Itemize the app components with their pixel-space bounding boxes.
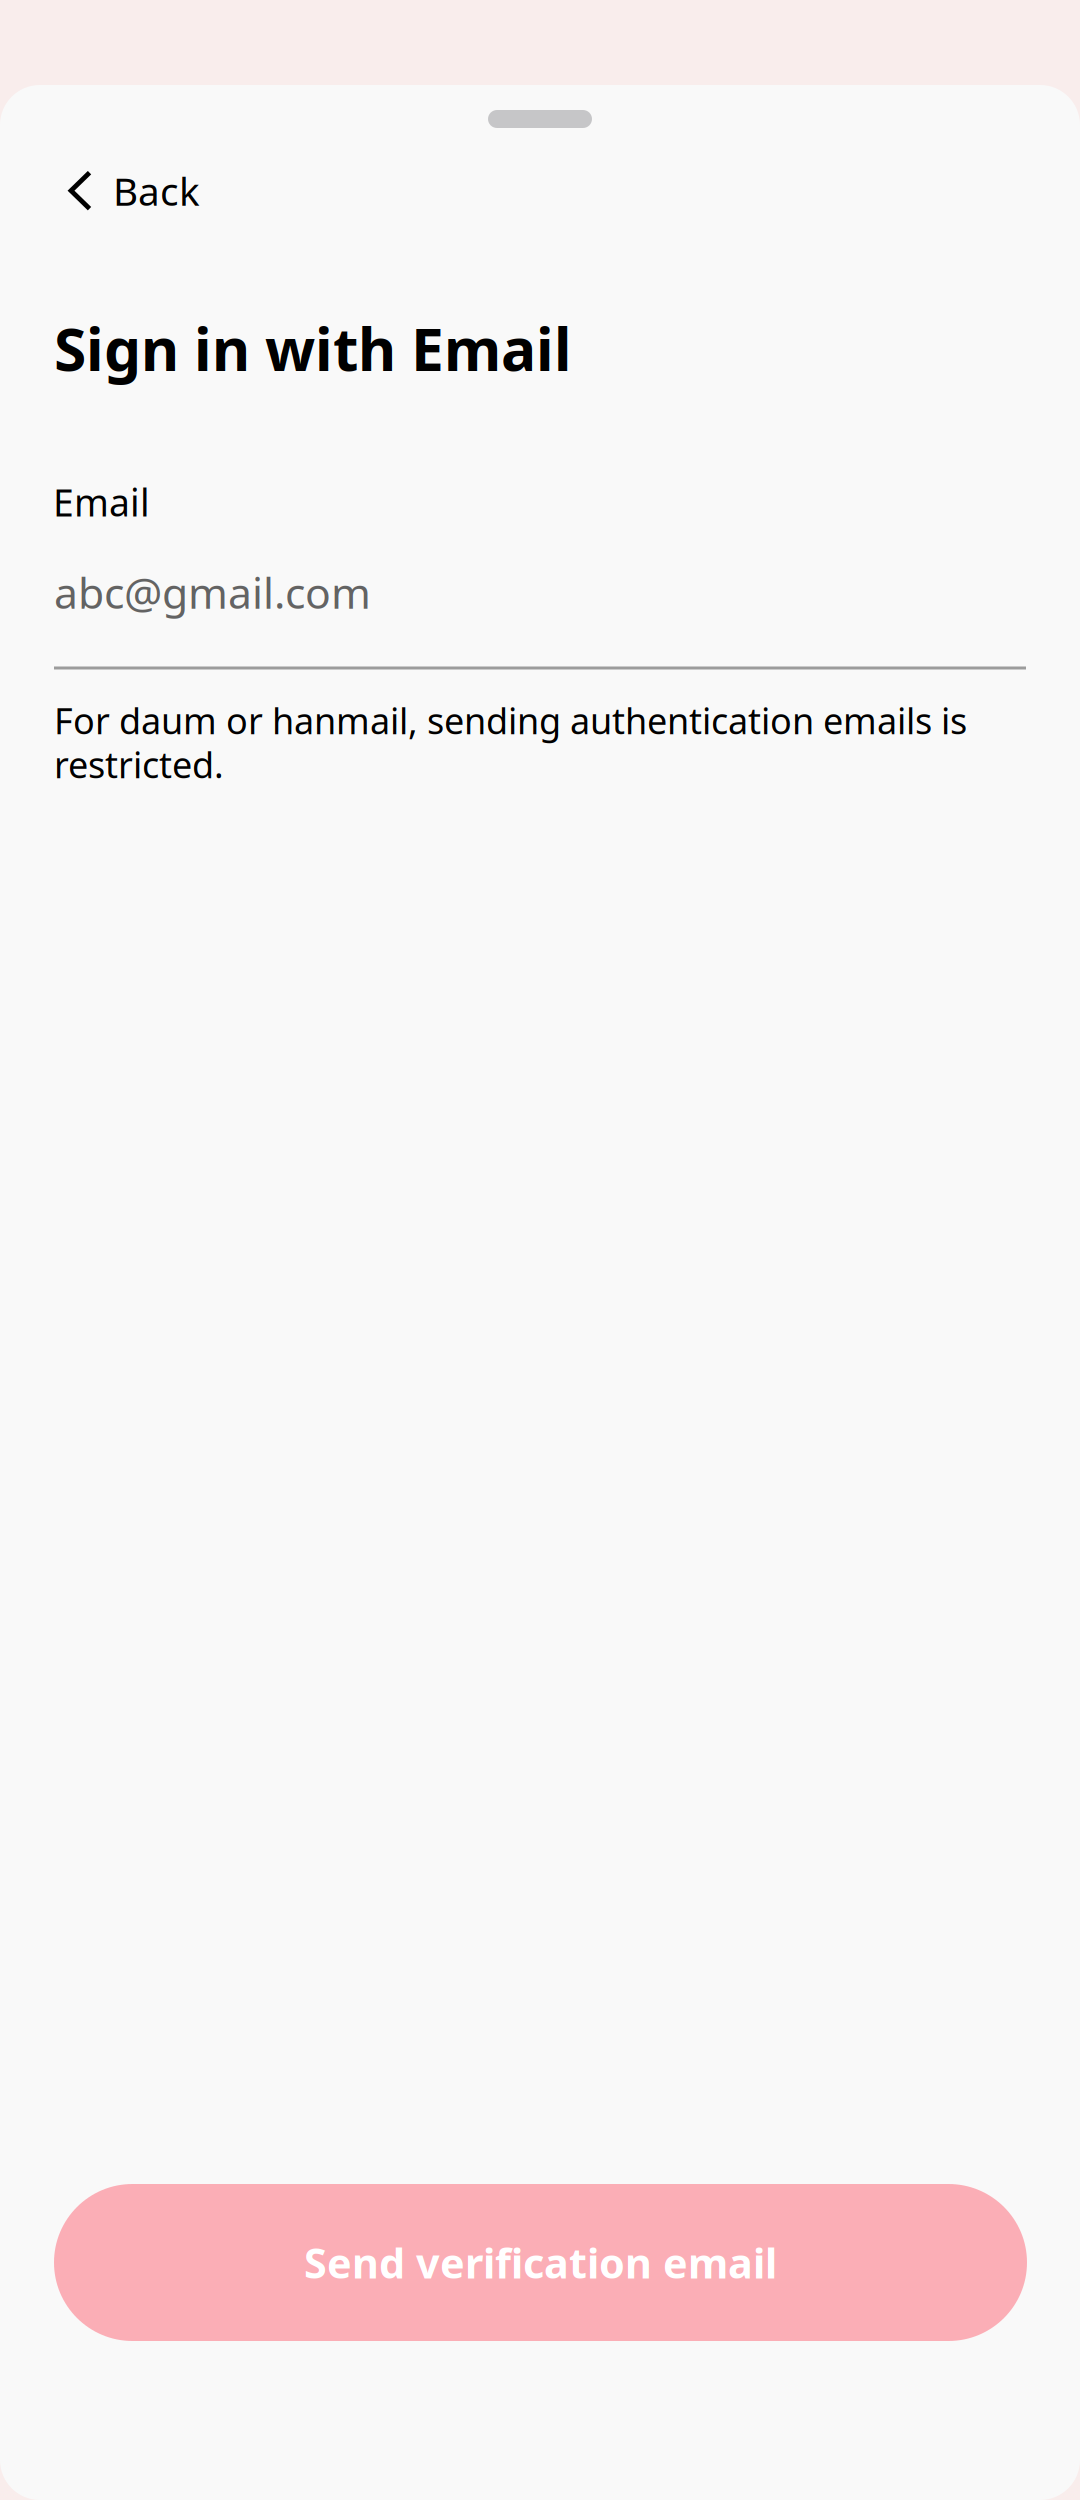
staticText: Back [113,165,200,216]
button[interactable]: Back [0,153,230,228]
button[interactable]: Send verification email [54,2184,1027,2341]
staticText: For daum or hanmail, sending authenticat… [54,696,967,788]
staticText: abc@gmail.com [54,564,371,620]
staticText: Send verification email [304,2235,777,2290]
staticText: Email [53,477,150,527]
button[interactable]: Email address [0,527,1080,669]
staticText: Sign in with Email [54,309,571,387]
